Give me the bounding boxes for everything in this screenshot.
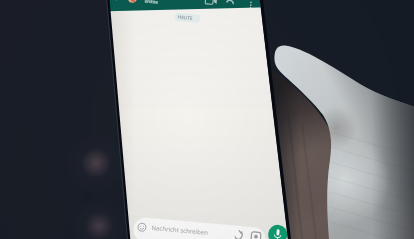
button[interactable] (127, 0, 197, 10)
button[interactable]: Attach (231, 221, 247, 239)
button[interactable]: Back (111, 0, 127, 10)
button[interactable]: Voice call (222, 0, 240, 8)
button[interactable]: Record voice message (268, 218, 288, 238)
button[interactable]: More options (244, 0, 260, 8)
button[interactable] (133, 220, 233, 239)
button[interactable]: Camera (248, 221, 264, 239)
button[interactable]: Video call (202, 0, 220, 8)
